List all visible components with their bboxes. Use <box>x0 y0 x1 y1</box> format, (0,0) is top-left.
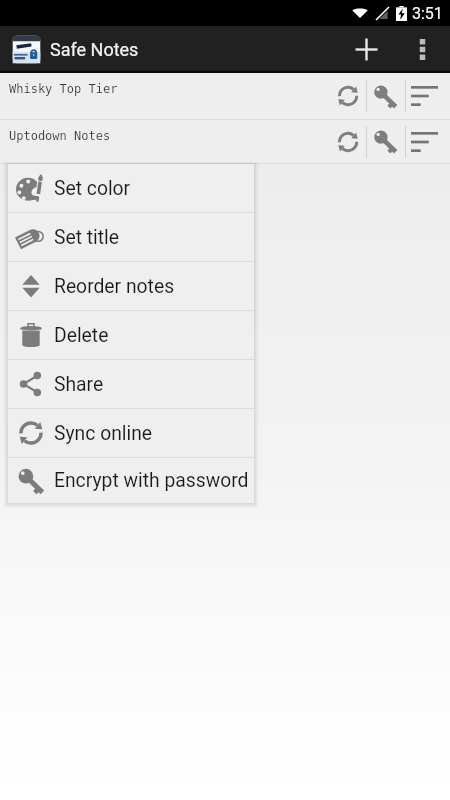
button[interactable]: Set title <box>8 213 254 261</box>
button[interactable]: Password <box>366 120 404 163</box>
button[interactable]: Encrypt with password <box>8 458 254 503</box>
staticText: Delete <box>54 324 109 347</box>
staticText: Sync online <box>54 422 153 445</box>
button[interactable]: Sync <box>330 73 366 119</box>
button[interactable]: Sort <box>402 120 446 163</box>
staticText: Set color <box>54 177 131 200</box>
button[interactable]: Sort <box>402 73 446 119</box>
button[interactable]: Uptodown Notes <box>0 120 450 163</box>
staticText: 3:51 <box>412 4 443 23</box>
button[interactable]: Set color <box>8 164 254 212</box>
button[interactable]: Add note <box>342 26 390 73</box>
button[interactable]: Sync online <box>8 409 254 457</box>
button[interactable]: Whisky Top Tier <box>0 73 450 119</box>
button[interactable]: Password <box>366 73 404 119</box>
button[interactable]: Share <box>8 360 254 408</box>
staticText: Uptodown Notes <box>9 129 111 143</box>
staticText: Whisky Top Tier <box>9 82 118 96</box>
staticText: Set title <box>54 226 120 249</box>
button[interactable]: Delete <box>8 311 254 359</box>
staticText: Safe Notes <box>50 39 139 60</box>
staticText: Share <box>54 373 104 396</box>
button[interactable]: Reorder notes <box>8 262 254 310</box>
staticText: Encrypt with password <box>54 469 249 492</box>
staticText: Reorder notes <box>54 275 175 298</box>
button[interactable]: Sync <box>330 120 366 163</box>
button[interactable]: More options <box>399 26 445 73</box>
